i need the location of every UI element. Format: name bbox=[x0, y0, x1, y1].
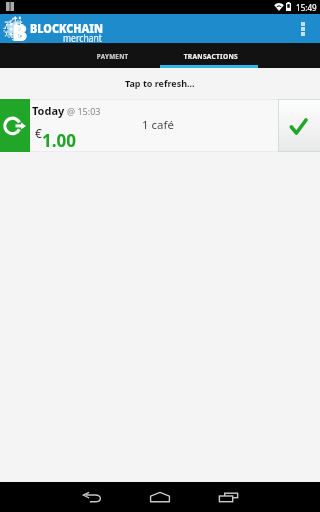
staticText: @ 15:03 bbox=[67, 105, 101, 117]
staticText: 1.00 bbox=[42, 129, 76, 152]
staticText: Tap to refresh... bbox=[125, 77, 195, 89]
staticText: € bbox=[35, 125, 42, 141]
button[interactable]: TRANSACTIONS bbox=[162, 43, 260, 68]
button[interactable]: Back bbox=[58, 482, 126, 512]
button[interactable]: Tap to refresh... bbox=[0, 68, 320, 99]
staticText: Today bbox=[32, 103, 65, 118]
staticText: TRANSACTIONS bbox=[184, 52, 238, 62]
staticText: merchant bbox=[63, 31, 103, 45]
button[interactable]: Recent apps bbox=[194, 482, 262, 512]
staticText: 15:49 bbox=[296, 1, 318, 13]
button[interactable]: Today bbox=[0, 99, 320, 152]
button[interactable]: Home bbox=[126, 482, 194, 512]
button[interactable]: Payment confirmed bbox=[279, 100, 320, 151]
staticText: PAYMENT bbox=[97, 52, 129, 62]
button[interactable]: PAYMENT bbox=[64, 43, 162, 68]
staticText: 1 café bbox=[142, 117, 174, 133]
button[interactable]: More options bbox=[292, 14, 320, 43]
staticText: B bbox=[12, 16, 28, 45]
staticText: BLOCKCHAIN bbox=[30, 19, 103, 37]
